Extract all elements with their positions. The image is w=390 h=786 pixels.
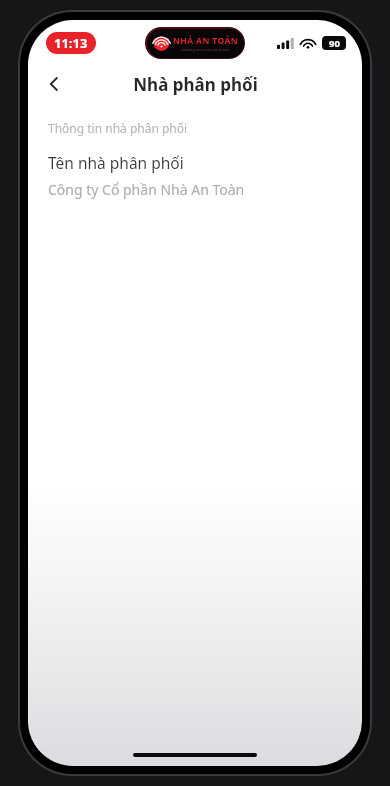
staticText: 11:13	[54, 34, 88, 52]
staticText: Tên nhà phân phối	[48, 152, 184, 173]
staticText: Thông tin nhà phân phối	[48, 120, 188, 136]
staticText: Nhà phân phối	[133, 73, 258, 96]
staticText: 90	[329, 37, 340, 50]
staticText: Công ty Cổ phần Nhà An Toàn	[48, 180, 245, 199]
button[interactable]: Back	[34, 66, 74, 102]
button[interactable]: Tên nhà phân phối	[28, 152, 362, 199]
staticText: NHÀ AN TOÀN	[173, 35, 238, 47]
staticText: leading security solutions	[181, 47, 230, 52]
